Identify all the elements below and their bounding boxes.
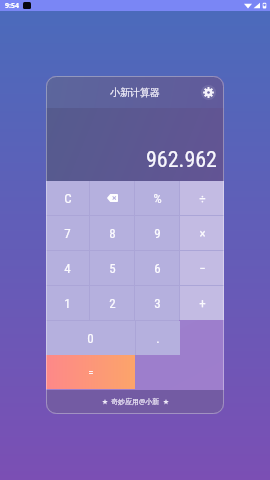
button[interactable]: + <box>180 286 224 320</box>
staticText: 小新计算器 <box>110 86 160 99</box>
staticText: 6 <box>154 261 161 276</box>
button[interactable]: 0 <box>46 321 135 355</box>
staticText: + <box>199 296 206 311</box>
staticText: 7 <box>64 226 71 241</box>
staticText: × <box>199 226 206 241</box>
button[interactable]: 1 <box>46 286 89 320</box>
button[interactable]: ÷ <box>180 181 224 215</box>
button[interactable]: 2 <box>90 286 134 320</box>
staticText: 3 <box>154 296 161 311</box>
staticText: − <box>199 261 206 276</box>
button[interactable]: 3 <box>135 286 179 320</box>
button[interactable]: × <box>180 216 224 250</box>
staticText: % <box>153 191 162 206</box>
staticText: 1 <box>64 296 71 311</box>
staticText: 2 <box>109 296 116 311</box>
button[interactable]: 4 <box>46 251 89 285</box>
staticText: 9:54 <box>5 1 19 11</box>
staticText: 5 <box>109 261 116 276</box>
staticText: 0 <box>87 331 94 346</box>
button[interactable]: 7 <box>46 216 89 250</box>
staticText: C <box>64 191 72 206</box>
button[interactable]: 9 <box>135 216 179 250</box>
staticText: 奇妙应用@小新 <box>111 397 160 407</box>
button[interactable]: Settings <box>201 85 216 100</box>
staticText: 9 <box>154 226 161 241</box>
button[interactable]: = <box>46 355 135 389</box>
staticText: 8 <box>109 226 116 241</box>
button[interactable]: C <box>46 181 89 215</box>
staticText: = <box>88 366 94 379</box>
button[interactable]: 6 <box>135 251 179 285</box>
staticText: ÷ <box>199 191 206 206</box>
staticText: 4 <box>64 261 71 276</box>
button[interactable]: Backspace <box>90 181 134 215</box>
button[interactable]: 8 <box>90 216 134 250</box>
staticText: . <box>156 331 160 346</box>
button[interactable]: % <box>135 181 179 215</box>
button[interactable]: − <box>180 251 224 285</box>
button[interactable]: 5 <box>90 251 134 285</box>
staticText: 962.962 <box>146 147 217 173</box>
